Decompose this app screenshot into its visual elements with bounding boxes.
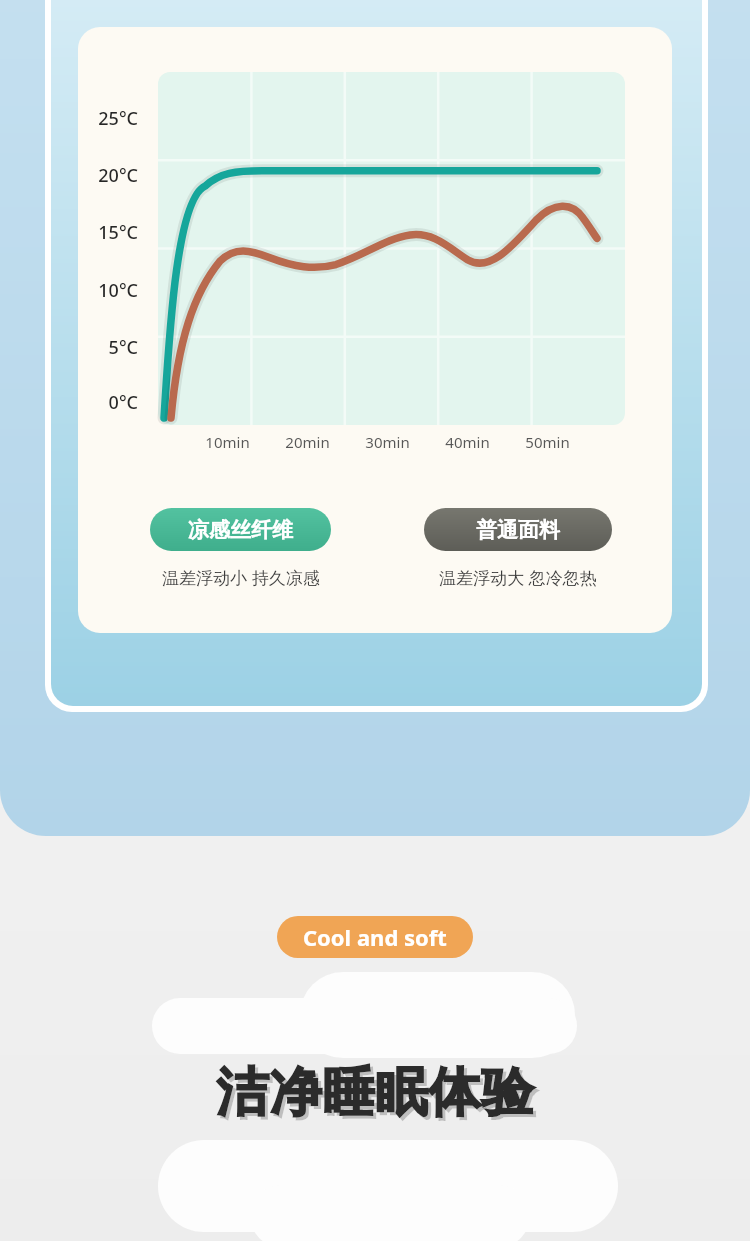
- staticText: 温差浮动小 持久凉感: [162, 566, 320, 589]
- staticText: 0°C: [108, 390, 138, 415]
- button[interactable]: 凉感丝纤维: [150, 508, 331, 551]
- staticText: 温差浮动大 忽冷忽热: [439, 566, 597, 589]
- staticText: 30min: [365, 432, 410, 452]
- staticText: 凉感丝纤维: [188, 517, 293, 543]
- staticText: 10°C: [98, 278, 138, 303]
- staticText: 15°C: [98, 220, 138, 245]
- button[interactable]: Cool and soft: [277, 916, 473, 958]
- staticText: 20°C: [98, 163, 138, 188]
- button[interactable]: 普通面料: [424, 508, 612, 551]
- staticText: 洁净睡眠体验: [216, 1060, 534, 1126]
- staticText: Cool and soft: [303, 922, 447, 952]
- staticText: 50min: [525, 432, 570, 452]
- staticText: 25°C: [98, 106, 138, 131]
- staticText: 5°C: [108, 335, 138, 360]
- staticText: 普通面料: [476, 517, 560, 543]
- staticText: 20min: [285, 432, 330, 452]
- staticText: 10min: [205, 432, 250, 452]
- staticText: 洁净睡眠体验: [219, 1063, 537, 1129]
- staticText: 40min: [445, 432, 490, 452]
